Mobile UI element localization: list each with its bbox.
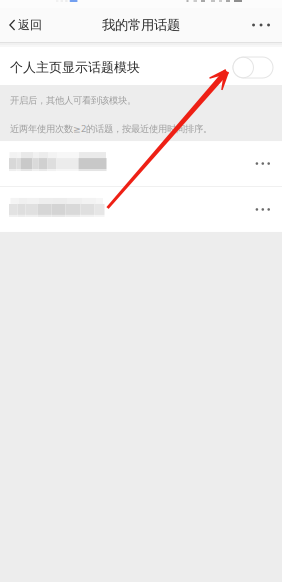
staticText: 近两年使用次数≥2的话题，按最近使用时间排序。 [10,122,212,135]
button[interactable]: 个人主页显示话题模块 [0,47,282,85]
staticText: 我的常用话题 [102,17,180,33]
button[interactable] [0,187,282,232]
staticText: 个人主页显示话题模块 [10,59,140,76]
staticText: 返回 [18,17,42,32]
button[interactable] [0,141,282,186]
button[interactable]: 返回 [0,8,56,42]
button[interactable]: 更多 [238,8,282,42]
staticText: 开启后，其他人可看到该模块。 [10,95,136,106]
